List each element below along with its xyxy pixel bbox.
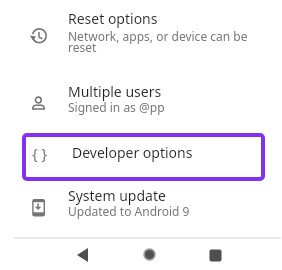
button[interactable]: Reset options [0, 5, 282, 60]
button[interactable]: System update [0, 183, 282, 225]
button[interactable] [130, 240, 170, 270]
staticText: Developer options [72, 143, 193, 162]
staticText: Multiple users [68, 82, 162, 101]
staticText: { } [32, 143, 48, 163]
staticText: Signed in as @pp [68, 99, 165, 115]
button[interactable] [196, 240, 236, 270]
staticText: Updated to Android 9 [68, 203, 190, 219]
staticText: Network, apps, or device can be [68, 28, 248, 44]
staticText: Reset options [68, 9, 158, 28]
button[interactable]: { } [22, 133, 265, 181]
button[interactable]: Multiple users [0, 81, 282, 123]
staticText: reset [68, 39, 97, 55]
button[interactable] [63, 240, 103, 270]
staticText: System update [68, 186, 166, 205]
